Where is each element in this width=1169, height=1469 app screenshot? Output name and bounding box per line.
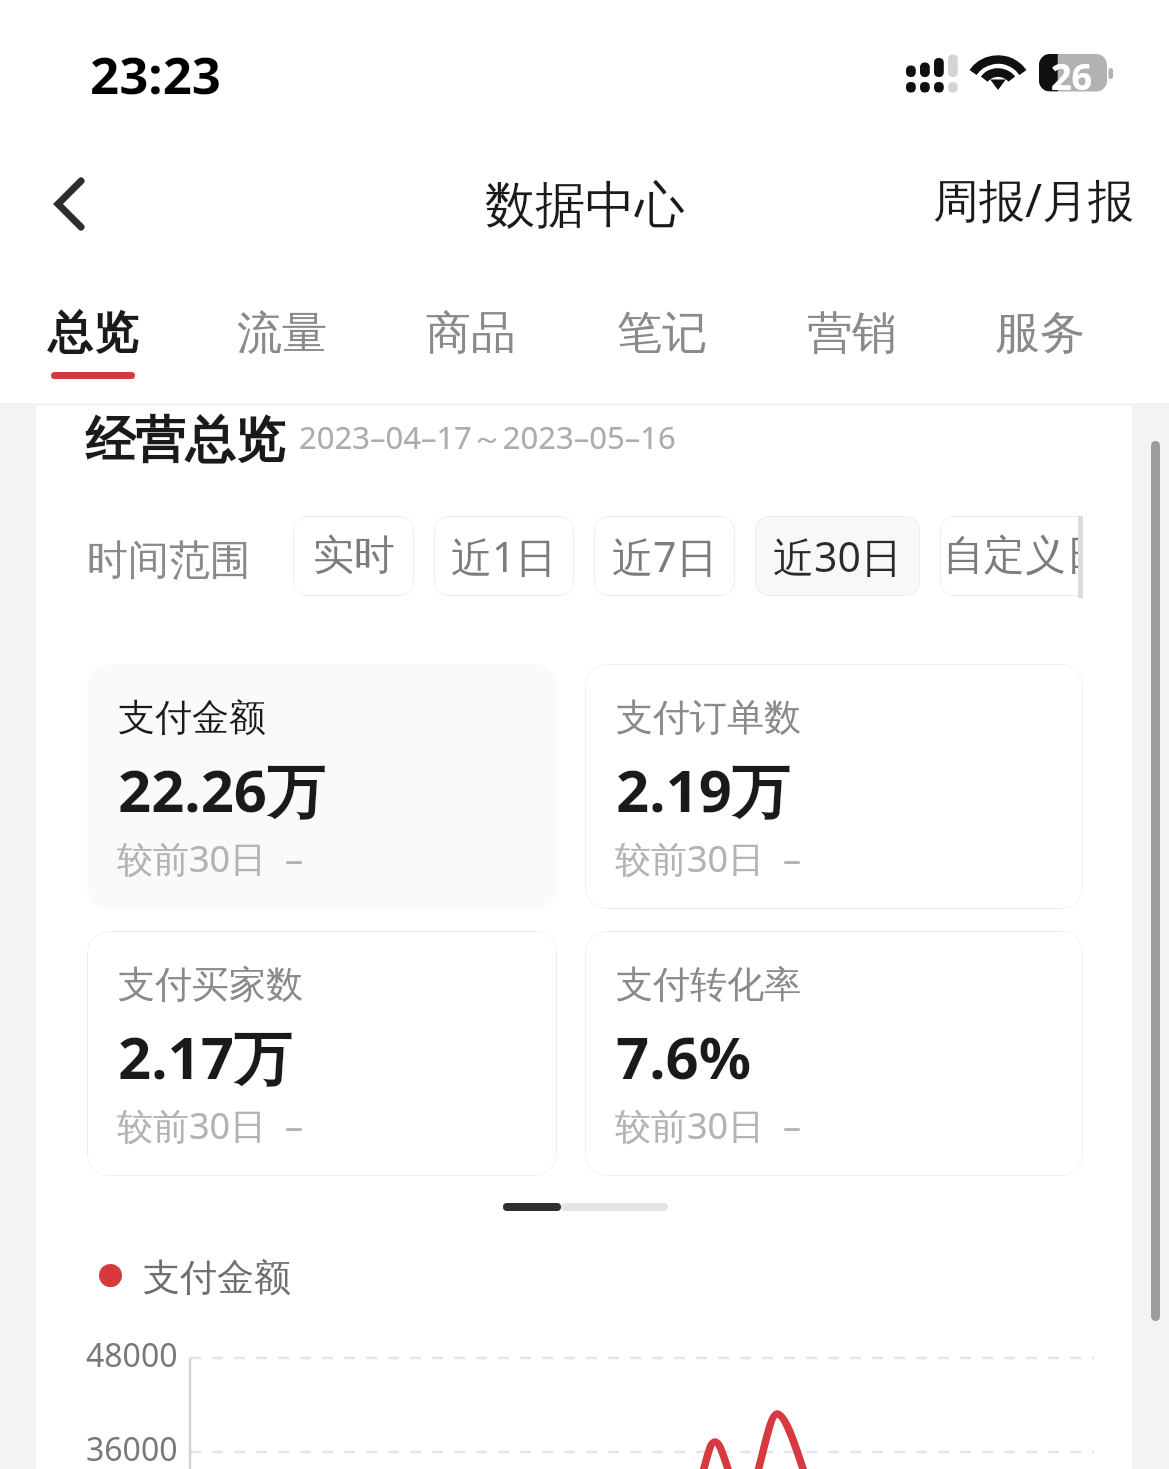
staticText: 近7日 [612, 528, 718, 584]
button[interactable]: 总览 [21, 291, 165, 394]
button[interactable]: 支付转化率 [585, 931, 1083, 1176]
staticText: 流量 [237, 305, 327, 362]
staticText: 支付订单数 [616, 694, 801, 741]
button[interactable]: 实时 [293, 516, 414, 596]
button[interactable]: 自定义日期 [940, 516, 1083, 596]
staticText: 实时 [313, 530, 395, 582]
staticText: 较前30日 – [117, 834, 303, 883]
staticText: 26 [1051, 52, 1093, 101]
staticText: 支付转化率 [616, 961, 801, 1008]
button[interactable]: 流量 [210, 291, 354, 394]
staticText: 商品 [426, 305, 516, 362]
staticText: 周报/月报 [933, 168, 1135, 231]
button[interactable]: 周报/月报 [913, 150, 1169, 249]
staticText: 支付金额 [118, 694, 266, 741]
staticText: 48000 [86, 1333, 178, 1377]
staticText: 经营总览 [85, 409, 285, 472]
button[interactable]: 服务 [968, 291, 1112, 394]
staticText: 23:23 [90, 39, 222, 108]
staticText: 数据中心 [485, 174, 685, 237]
button[interactable]: 商品 [399, 291, 543, 394]
staticText: 总览 [48, 305, 138, 362]
staticText: 22.26万 [118, 750, 326, 829]
button[interactable]: 支付订单数 [585, 664, 1083, 909]
staticText: 笔记 [617, 305, 707, 362]
button[interactable]: 近7日 [594, 516, 735, 596]
button[interactable]: 近1日 [434, 516, 574, 596]
button[interactable]: Back [20, 157, 116, 253]
button[interactable]: 笔记 [590, 291, 734, 394]
button[interactable]: 支付金额 [87, 664, 557, 909]
button[interactable]: 近30日 [755, 516, 920, 596]
button[interactable]: 支付买家数 [87, 931, 557, 1176]
staticText: 7.6% [616, 1017, 751, 1096]
staticText: 近1日 [451, 528, 557, 584]
staticText: 支付金额 [143, 1254, 291, 1301]
staticText: 较前30日 – [615, 1101, 801, 1150]
staticText: 2023–04–17～2023–05–16 [299, 416, 676, 458]
staticText: 2.19万 [616, 750, 790, 829]
button[interactable]: 营销 [780, 291, 924, 394]
staticText: 营销 [807, 305, 897, 362]
staticText: 服务 [995, 305, 1085, 362]
staticText: 自定义日期 [943, 530, 1083, 582]
staticText: 支付买家数 [118, 961, 303, 1008]
staticText: 时间范围 [87, 535, 251, 587]
staticText: 较前30日 – [117, 1101, 303, 1150]
staticText: 2.17万 [118, 1017, 292, 1096]
staticText: 36000 [86, 1427, 178, 1469]
staticText: 近30日 [773, 528, 902, 584]
staticText: 较前30日 – [615, 834, 801, 883]
